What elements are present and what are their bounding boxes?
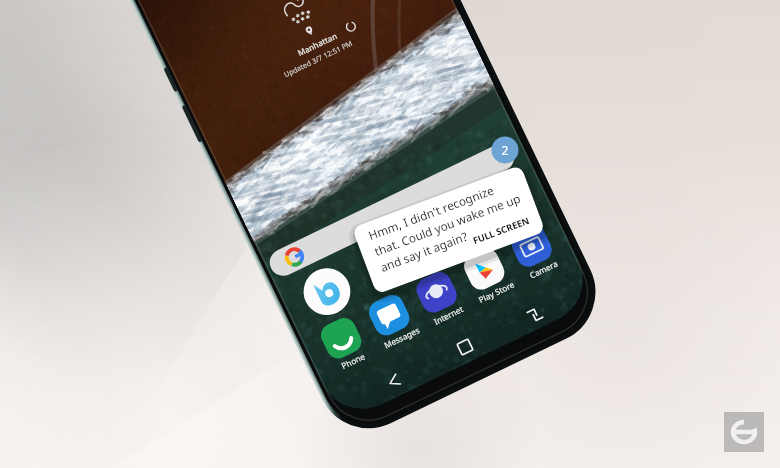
button[interactable]	[0, 0, 780, 468]
